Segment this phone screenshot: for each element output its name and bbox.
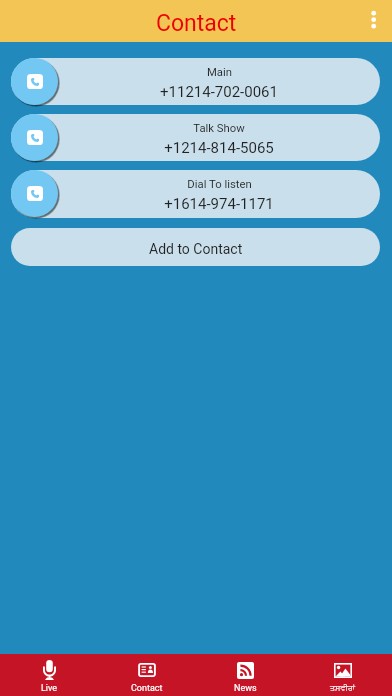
button[interactable]: Main <box>11 58 380 105</box>
button[interactable]: Contact <box>98 654 196 696</box>
staticText: Main <box>207 66 232 79</box>
staticText: ਤਸਵੀਰਾਂ <box>330 685 356 693</box>
button[interactable]: More options <box>355 0 392 42</box>
staticText: +1614-974-1171 <box>164 195 274 213</box>
staticText: +1214-814-5065 <box>164 139 274 157</box>
button[interactable]: Live <box>0 654 98 696</box>
button[interactable]: ਤਸਵੀਰਾਂ <box>294 654 392 696</box>
button[interactable]: Add to Contact <box>11 228 380 266</box>
staticText: Contact <box>156 10 237 37</box>
staticText: +11214-702-0061 <box>160 83 278 101</box>
staticText: Dial To listen <box>187 178 252 191</box>
staticText: Add to Contact <box>149 241 243 257</box>
button[interactable]: Talk Show <box>11 114 380 161</box>
button[interactable]: Dial To listen <box>11 170 380 218</box>
staticText: Talk Show <box>193 122 245 135</box>
staticText: Live <box>41 683 58 694</box>
button[interactable]: News <box>196 654 294 696</box>
staticText: News <box>234 683 257 694</box>
staticText: Contact <box>131 683 163 694</box>
